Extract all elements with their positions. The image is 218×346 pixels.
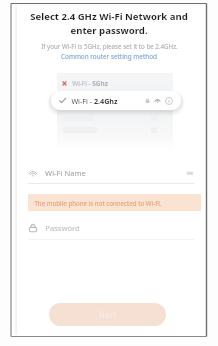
staticText: Common router setting method: [61, 52, 157, 61]
staticText: The mobile phone is not connected to Wi-…: [34, 199, 162, 207]
button[interactable]: Wi-Fi - 5Ghz: [61, 77, 169, 90]
button[interactable]: Wi-Fi - 2.4Ghz: [59, 91, 173, 110]
staticText: If your Wi-Fi is 5GHz, please set it to …: [41, 42, 178, 50]
button[interactable]: Password: [28, 218, 194, 238]
button[interactable]: Wi-Fi Name: [28, 163, 194, 183]
staticText: Next: [98, 309, 117, 320]
staticText: Wi-Fi - 2.4Ghz: [71, 96, 118, 106]
staticText: Password: [45, 223, 80, 233]
button[interactable]: Refresh Wi-Fi list: [186, 170, 194, 177]
staticText: enter password.: [70, 24, 148, 37]
staticText: Wi-Fi - 5Ghz: [72, 79, 108, 88]
staticText: Select 2.4 GHz Wi-Fi Network and: [30, 10, 188, 23]
staticText: Wi-Fi Name: [45, 168, 86, 178]
button[interactable]: Next: [49, 303, 166, 326]
button[interactable]: Common router setting method: [11, 52, 207, 61]
